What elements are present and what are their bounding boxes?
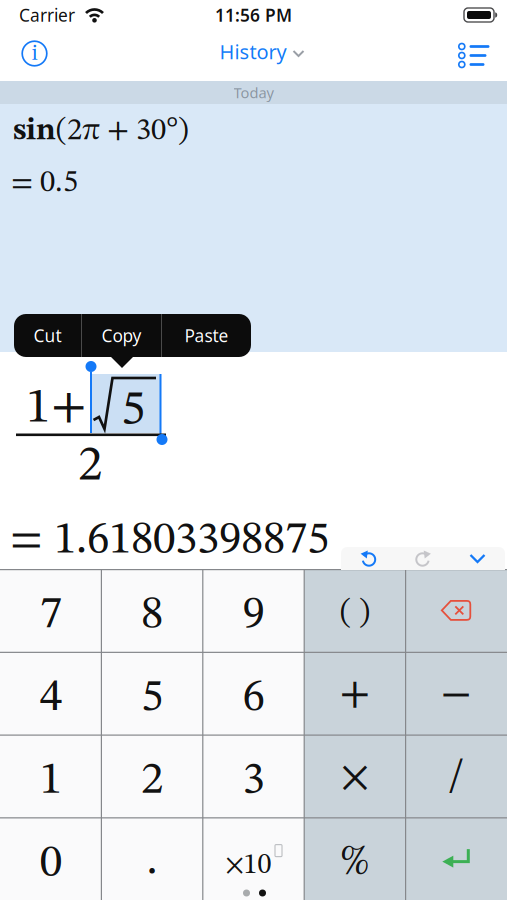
button[interactable]: 5 [101, 652, 203, 735]
button[interactable]: Redo [396, 547, 450, 570]
button[interactable]: . [101, 817, 203, 900]
button[interactable]: Hide keyboard [450, 547, 505, 570]
staticText: + [51, 383, 87, 432]
button[interactable]: About [0, 42, 48, 69]
staticText: 4 [40, 675, 62, 721]
button[interactable]: Return [406, 817, 507, 900]
staticText: ×10 [225, 852, 271, 880]
staticText: Paste [184, 324, 228, 347]
staticText: (2π + 30°) [56, 116, 189, 147]
staticText: i [31, 42, 37, 65]
button[interactable]: % [304, 817, 406, 900]
button[interactable]: Copy [82, 314, 161, 357]
button[interactable]: 6 [203, 652, 304, 735]
staticText: 1 [40, 758, 62, 803]
staticText: 2 [78, 442, 102, 491]
staticText: 8 [141, 593, 163, 638]
staticText: = 1.61803398875 [10, 518, 329, 563]
staticText: 1 [26, 384, 50, 433]
staticText: % [340, 841, 370, 884]
staticText: + [339, 674, 370, 716]
staticText: 0 [40, 841, 62, 886]
staticText: ( ) [340, 597, 370, 629]
staticText: 3 [242, 758, 264, 803]
button[interactable]: 9 [203, 569, 304, 652]
staticText: History [219, 38, 286, 65]
staticText: Copy [101, 324, 141, 347]
staticText: Carrier [19, 3, 75, 26]
button[interactable]: Undo [341, 547, 396, 570]
staticText: 5 [141, 675, 163, 721]
staticText: × [341, 756, 369, 799]
button[interactable]: 0 [0, 817, 101, 900]
staticText: / [448, 756, 465, 799]
button[interactable]: / [406, 734, 507, 817]
button[interactable]: 4 [0, 652, 101, 735]
button[interactable]: Cut [14, 314, 81, 357]
button[interactable]: − [406, 652, 507, 735]
staticText: . [147, 839, 158, 884]
staticText: Cut [33, 324, 61, 347]
button[interactable]: History [219, 38, 304, 65]
staticText: 11:56 PM [215, 3, 292, 26]
button[interactable]: 3 [203, 734, 304, 817]
staticText: 9 [242, 593, 264, 638]
button[interactable]: ( ) [304, 569, 406, 652]
button[interactable]: × [304, 734, 406, 817]
button[interactable]: 8 [101, 569, 203, 652]
button[interactable]: 7 [0, 569, 101, 652]
button[interactable]: Paste [162, 314, 251, 357]
button[interactable]: + [304, 652, 406, 735]
staticText: sin [13, 116, 56, 147]
staticText: = 0.5 [11, 168, 78, 199]
staticText: − [441, 674, 472, 716]
staticText: 6 [242, 675, 264, 721]
button[interactable]: 2 [101, 734, 203, 817]
staticText: 2 [141, 758, 163, 803]
staticText: 5 [121, 386, 145, 435]
staticText: 7 [40, 593, 62, 638]
button[interactable]: 1 [0, 734, 101, 817]
staticText: Today [233, 83, 273, 102]
button[interactable]: Delete [406, 569, 507, 652]
button[interactable]: History options [458, 42, 507, 68]
button[interactable]: Times ten to the power [203, 817, 304, 900]
